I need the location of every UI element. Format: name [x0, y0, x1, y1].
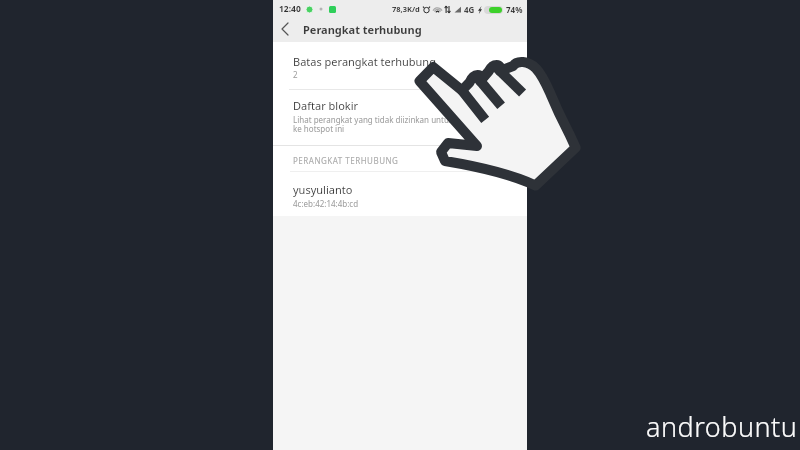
staticText: Lihat perangkat yang tidak diizinkan unt… [293, 114, 454, 135]
button[interactable]: Back [273, 20, 297, 38]
button[interactable]: Daftar blokir [273, 90, 527, 145]
staticText: Daftar blokir [293, 98, 359, 113]
staticText: Perangkat terhubung [303, 22, 422, 37]
staticText: androbuntu [646, 408, 798, 445]
staticText: 74% [506, 4, 523, 15]
staticText: 4G [464, 4, 475, 15]
staticText: PERANGKAT TERHUBUNG [293, 155, 399, 166]
staticText: 2 [293, 69, 298, 80]
staticText: 78,3K/d [392, 4, 420, 14]
button[interactable]: yusyulianto [273, 172, 527, 216]
button[interactable]: Batas perangkat terhubung [273, 42, 527, 89]
staticText: Batas perangkat terhubung [293, 54, 436, 69]
staticText: yusyulianto [293, 182, 353, 197]
staticText: 12:40 [279, 3, 301, 15]
staticText: 4c:eb:42:14:4b:cd [293, 198, 359, 209]
